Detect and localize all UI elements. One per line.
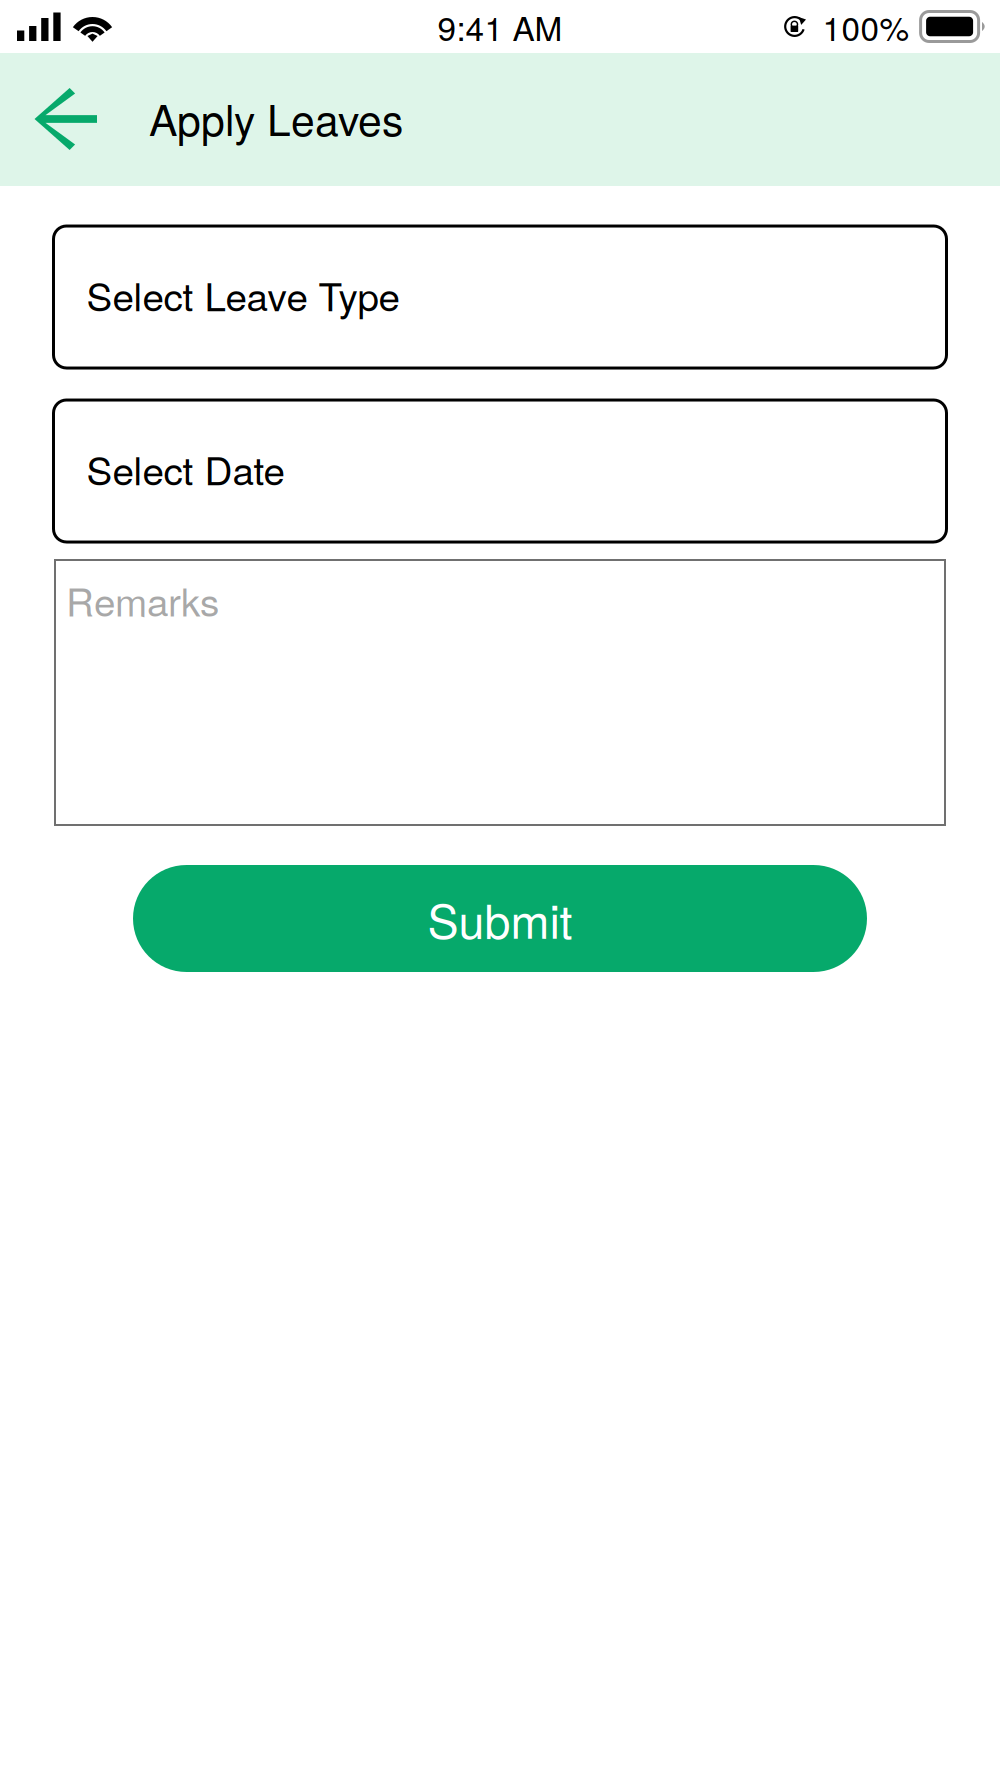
staticText: 9:41 AM xyxy=(437,3,562,50)
button[interactable]: Select Date xyxy=(53,400,946,542)
staticText: Select Leave Type xyxy=(86,267,399,322)
staticText: Select Date xyxy=(86,441,284,496)
staticText: Apply Leaves xyxy=(149,87,403,148)
button[interactable]: Remarks xyxy=(55,560,945,825)
button[interactable]: Back xyxy=(7,53,135,186)
staticText: 100% xyxy=(823,3,910,50)
staticText: Submit xyxy=(427,885,572,952)
button[interactable]: Select Leave Type xyxy=(53,226,946,368)
staticText: Remarks xyxy=(66,572,219,627)
button[interactable]: Submit xyxy=(133,865,867,972)
